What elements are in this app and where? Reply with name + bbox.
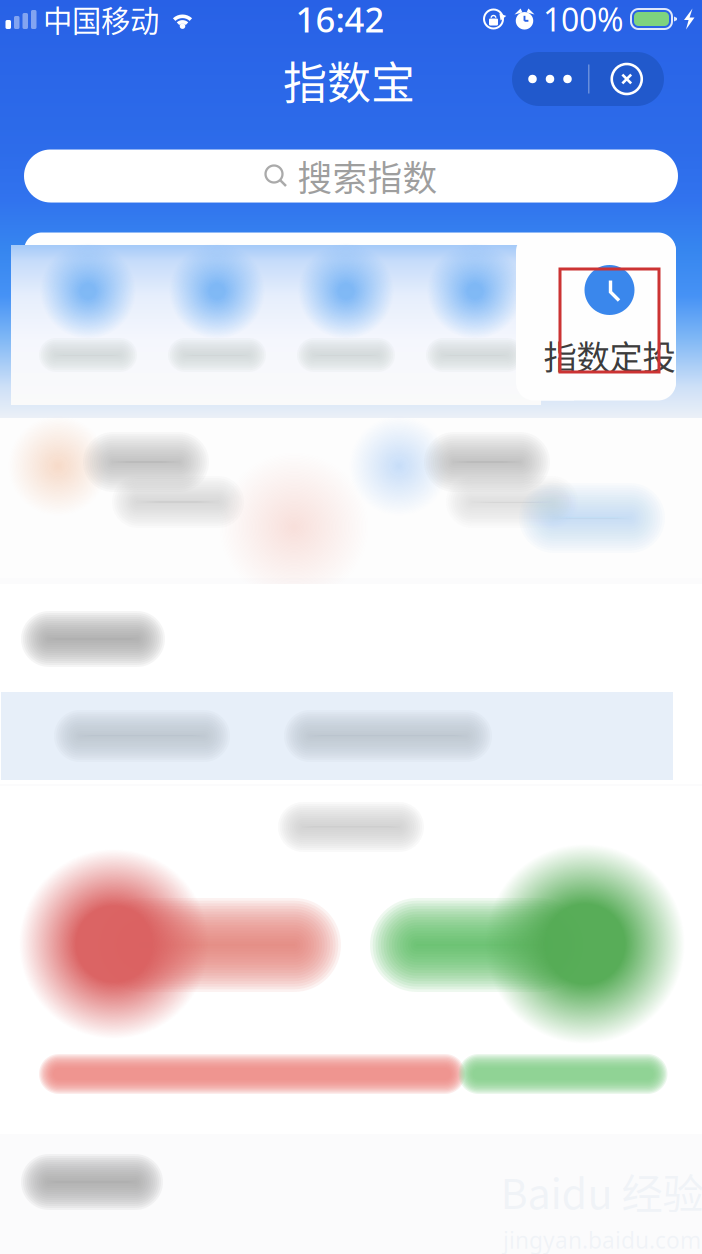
staticText: Baidu 经验 xyxy=(500,1161,702,1221)
button[interactable]: More xyxy=(512,52,588,106)
button[interactable]: 指数定投 xyxy=(560,269,659,372)
staticText: 指数宝 xyxy=(283,48,415,112)
staticText: 16:42 xyxy=(295,0,384,42)
button[interactable]: 搜索指数 xyxy=(24,149,678,202)
staticText: 搜索指数 xyxy=(297,151,437,201)
staticText: 指数定投 xyxy=(543,331,675,379)
button[interactable]: Close xyxy=(589,52,664,106)
staticText: 100% xyxy=(543,0,624,40)
staticText: 中国移动 xyxy=(43,0,159,40)
staticText: jingyan.baidu.com xyxy=(503,1225,701,1254)
